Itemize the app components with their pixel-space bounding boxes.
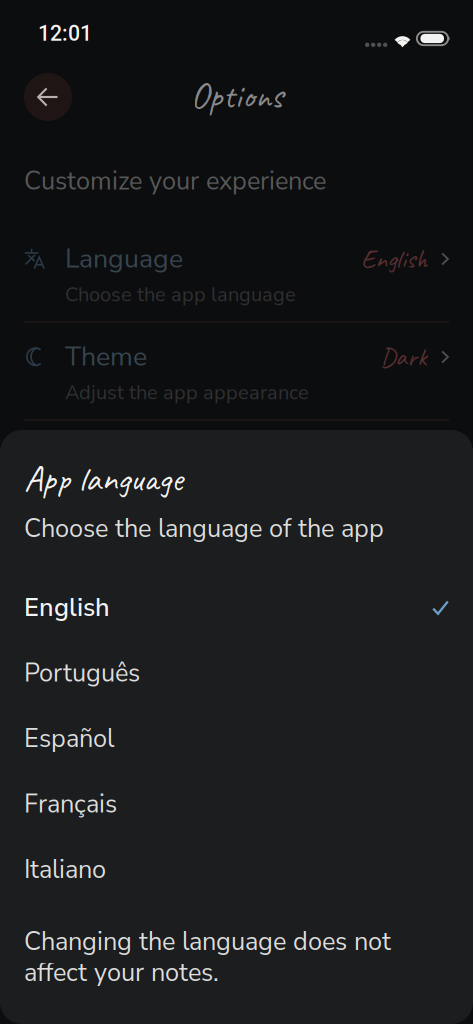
staticText: affect your notes. [24,955,219,990]
staticText: Choose the language of the app [24,511,384,546]
staticText: Português [24,656,140,690]
staticText: English [361,242,427,275]
staticText: Options [190,73,282,118]
staticText: English [24,590,110,625]
button[interactable]: Português [0,640,473,706]
staticText: 12:01 [38,21,92,46]
staticText: Choose the app language [65,281,296,308]
button[interactable]: English [0,575,473,640]
staticText: App language [24,456,183,501]
button[interactable]: Français [0,771,473,837]
staticText: Italiano [24,852,106,887]
button[interactable]: Español [0,706,473,771]
staticText: Español [24,721,114,756]
staticText: Customize your experience [24,164,326,199]
button[interactable]: Italiano [0,837,473,902]
staticText: Français [24,787,117,821]
staticText: Adjust the app appearance [65,379,309,406]
staticText: Language [65,241,183,277]
staticText: Dark [380,340,427,373]
button[interactable]: Back [24,73,72,121]
button[interactable]: Theme [0,323,473,420]
staticText: Changing the language does not [24,924,391,959]
staticText: Theme [65,339,147,375]
button[interactable]: Language [0,222,473,322]
